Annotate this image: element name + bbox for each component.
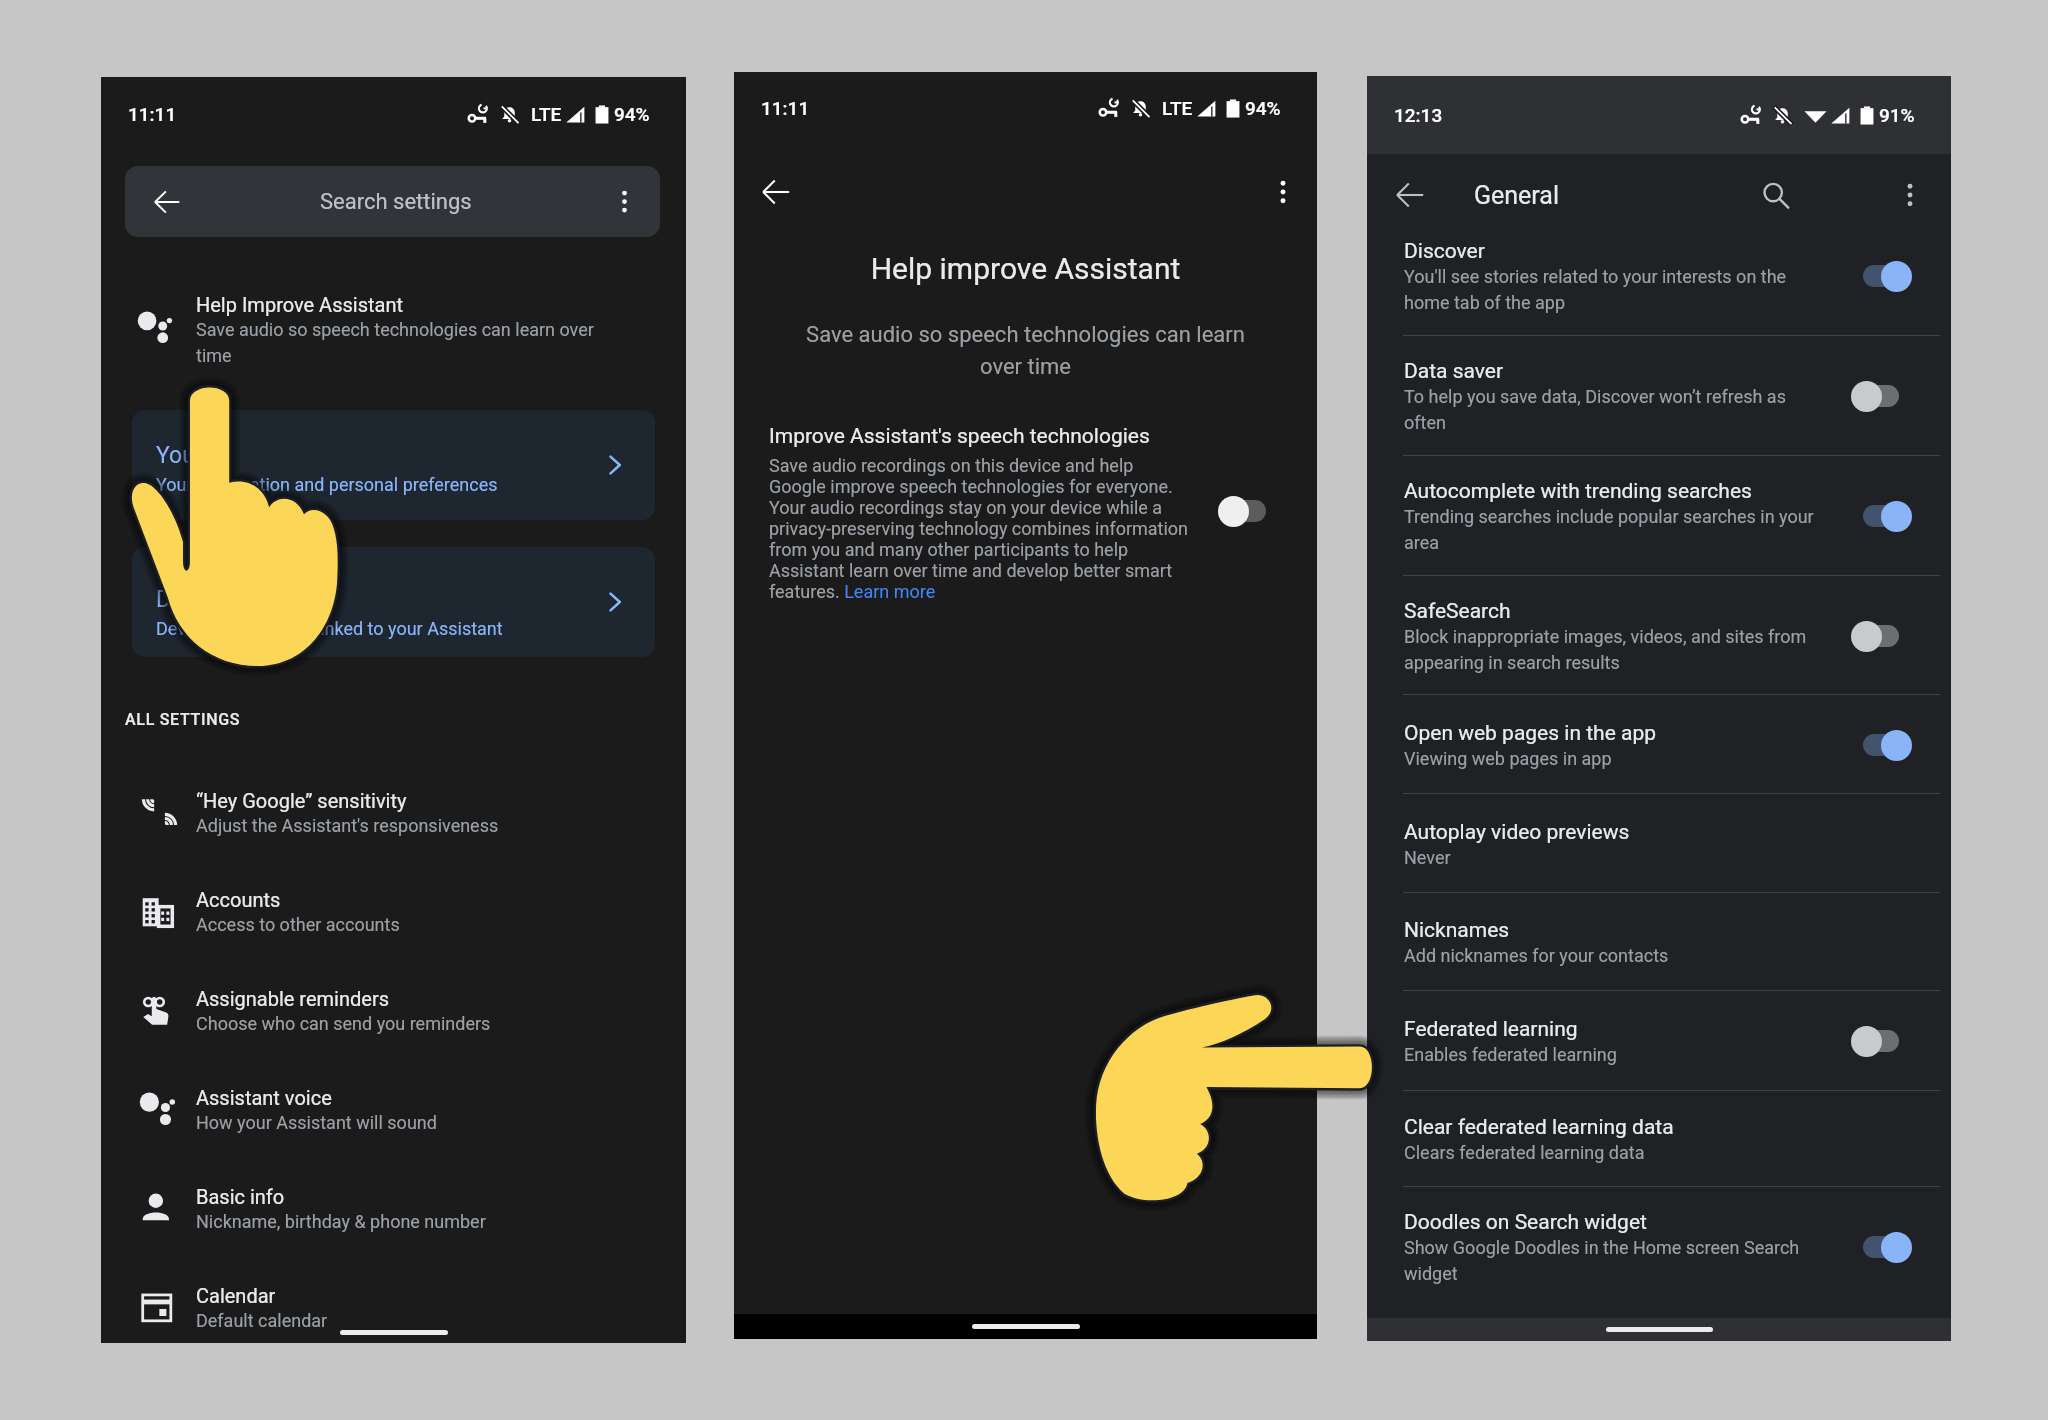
- staticText: Default calendar: [196, 1310, 328, 1331]
- staticText: 94%: [1245, 97, 1281, 119]
- staticText: You: [156, 442, 195, 469]
- staticText: 11:11: [761, 97, 810, 119]
- staticText: Clear federated learning data: [1404, 1115, 1674, 1140]
- staticText: 11:11: [128, 103, 177, 125]
- button[interactable]: Autocomplete with trending searches: [1367, 456, 1951, 576]
- button[interactable]: Autoplay video previews: [1367, 794, 1951, 893]
- staticText: Nicknames: [1404, 918, 1510, 943]
- staticText: 12:13: [1394, 104, 1443, 126]
- button[interactable]: Data saver: [1367, 336, 1951, 456]
- button[interactable]: More options: [1270, 179, 1296, 205]
- staticText: Viewing web pages in app: [1404, 748, 1612, 769]
- staticText: Never: [1404, 847, 1451, 868]
- staticText: ALL SETTINGS: [125, 710, 241, 729]
- staticText: Autocomplete with trending searches: [1404, 479, 1752, 504]
- staticText: Calendar: [196, 1284, 276, 1307]
- button[interactable]: “Hey Google” sensitivity: [101, 763, 686, 862]
- staticText: Show Google Doodles in the Home screen S…: [1404, 1237, 1819, 1284]
- staticText: General: [1474, 181, 1560, 210]
- staticText: Help Improve Assistant: [196, 293, 403, 316]
- staticText: Help improve Assistant: [734, 251, 1317, 286]
- staticText: Save audio so speech technologies can le…: [786, 322, 1265, 379]
- staticText: Access to other accounts: [196, 914, 400, 935]
- staticText: Nickname, birthday & phone number: [196, 1211, 486, 1232]
- button[interactable]: Search: [1761, 181, 1790, 210]
- staticText: Search settings: [320, 189, 472, 215]
- button[interactable]: Back: [153, 188, 181, 216]
- staticText: SafeSearch: [1404, 599, 1511, 624]
- button[interactable]: You: [132, 410, 655, 520]
- staticText: You'll see stories related to your inter…: [1404, 266, 1819, 313]
- button[interactable]: Back: [125, 166, 660, 237]
- button[interactable]: Back: [1395, 180, 1425, 210]
- button[interactable]: Accounts: [101, 862, 686, 961]
- staticText: LTE: [1162, 97, 1193, 119]
- staticText: How your Assistant will sound: [196, 1112, 437, 1133]
- button[interactable]: Devices: [132, 547, 655, 657]
- button[interactable]: Clear federated learning data: [1367, 1091, 1951, 1187]
- staticText: 91%: [1879, 104, 1915, 126]
- staticText: Assistant voice: [196, 1086, 332, 1109]
- button[interactable]: SafeSearch: [1367, 576, 1951, 695]
- staticText: Enables federated learning: [1404, 1044, 1617, 1065]
- staticText: Data saver: [1404, 359, 1504, 384]
- staticText: Accounts: [196, 888, 281, 911]
- button[interactable]: [1851, 729, 1912, 761]
- button[interactable]: Assignable reminders: [101, 961, 686, 1060]
- button[interactable]: Open web pages in the app: [1367, 695, 1951, 794]
- staticText: Trending searches include popular search…: [1404, 506, 1819, 553]
- button[interactable]: [1851, 1231, 1912, 1263]
- staticText: Add nicknames for your contacts: [1404, 945, 1669, 966]
- staticText: Devices & speakers linked to your Assist…: [156, 618, 503, 639]
- button[interactable]: [1851, 380, 1912, 412]
- staticText: LTE: [531, 103, 562, 125]
- button[interactable]: [1218, 495, 1279, 527]
- staticText: Discover: [1404, 239, 1485, 264]
- button[interactable]: [1851, 1025, 1912, 1057]
- staticText: Doodles on Search widget: [1404, 1210, 1647, 1235]
- staticText: Adjust the Assistant's responsiveness: [196, 815, 499, 836]
- button[interactable]: [1851, 500, 1912, 532]
- button[interactable]: Basic info: [101, 1159, 686, 1258]
- button[interactable]: [1851, 620, 1912, 652]
- button[interactable]: Assistant voice: [101, 1060, 686, 1159]
- staticText: “Hey Google” sensitivity: [196, 789, 407, 812]
- staticText: Clears federated learning data: [1404, 1142, 1645, 1163]
- button[interactable]: Discover: [1367, 216, 1951, 336]
- button[interactable]: Doodles on Search widget: [1367, 1187, 1951, 1307]
- staticText: Assignable reminders: [196, 987, 389, 1010]
- button[interactable]: More options: [612, 189, 637, 214]
- staticText: 94%: [614, 103, 650, 125]
- staticText: Federated learning: [1404, 1017, 1578, 1042]
- staticText: Your information and personal preference…: [156, 474, 498, 495]
- button[interactable]: Federated learning: [1367, 991, 1951, 1091]
- staticText: Save audio recordings on this device and…: [769, 455, 1194, 602]
- staticText: To help you save data, Discover won’t re…: [1404, 386, 1819, 433]
- button[interactable]: [1851, 260, 1912, 292]
- staticText: Block inappropriate images, videos, and …: [1404, 626, 1819, 673]
- button[interactable]: Back: [761, 177, 791, 207]
- button[interactable]: Nicknames: [1367, 893, 1951, 991]
- staticText: Devices: [156, 586, 236, 613]
- staticText: Improve Assistant's speech technologies: [769, 424, 1150, 449]
- button[interactable]: Calendar: [101, 1258, 686, 1357]
- staticText: Autoplay video previews: [1404, 820, 1630, 845]
- staticText: Open web pages in the app: [1404, 721, 1656, 746]
- button[interactable]: More options: [1897, 182, 1923, 208]
- staticText: Basic info: [196, 1185, 285, 1208]
- staticText: Choose who can send you reminders: [196, 1013, 491, 1034]
- staticText: Save audio so speech technologies can le…: [196, 319, 611, 367]
